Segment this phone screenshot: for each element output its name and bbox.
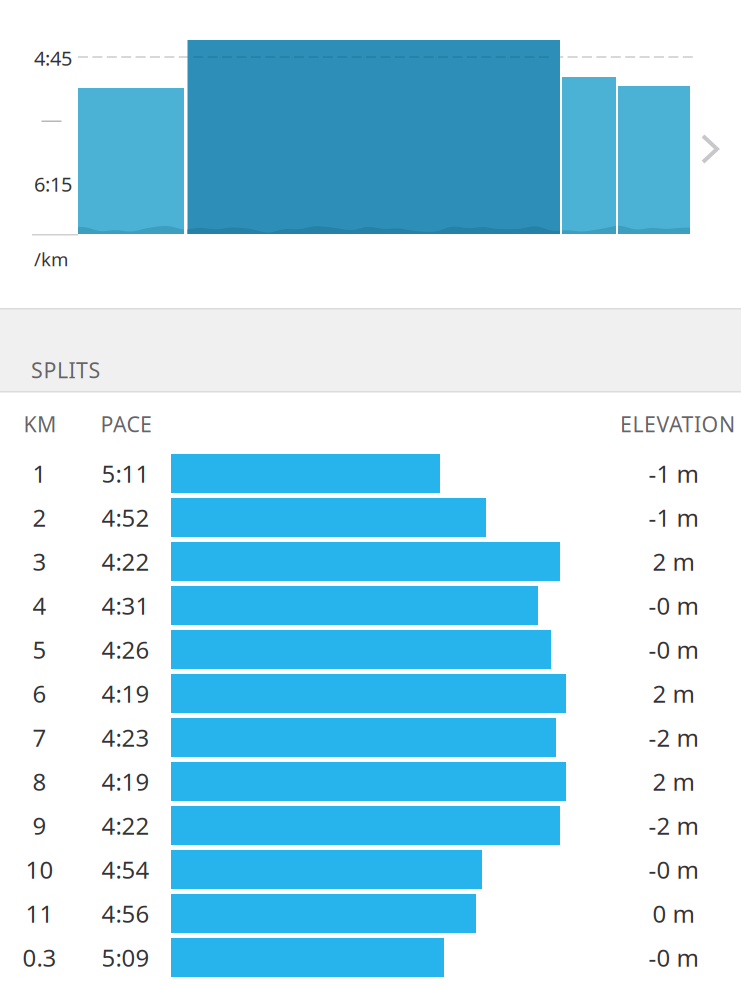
staticText: -0 m [648,634,698,665]
staticText: PACE [100,410,152,438]
staticText: KM [23,410,56,438]
staticText: 4:26 [101,634,149,665]
staticText: ELEVATION [620,410,735,438]
button[interactable]: 6 [0,671,741,715]
staticText: 5:09 [101,942,149,973]
staticText: -2 m [648,810,698,841]
staticText: /km [34,247,68,271]
staticText: 4:23 [101,722,149,753]
staticText: 4 [32,590,46,621]
staticText: 2 m [652,678,694,709]
staticText: 6:15 [34,171,72,197]
staticText: 7 [32,722,46,753]
staticText: 11 [25,898,53,929]
staticText: 4:22 [101,546,149,577]
staticText: -1 m [648,502,698,533]
staticText: 2 [32,502,46,533]
button[interactable]: 11 [0,891,741,935]
staticText: -0 m [648,942,698,973]
staticText: 8 [32,766,46,797]
staticText: 0 m [652,898,694,929]
staticText: 4:19 [101,766,149,797]
button[interactable]: Next split [692,125,740,173]
staticText: -0 m [648,854,698,885]
button[interactable]: 9 [0,803,741,847]
staticText: 4:56 [101,898,149,929]
staticText: 3 [32,546,46,577]
button[interactable]: 4 [0,583,741,627]
staticText: 10 [25,854,53,885]
staticText: 4:52 [101,502,149,533]
button[interactable]: 1 [0,451,741,495]
staticText: SPLITS [31,356,100,384]
button[interactable]: 5 [0,627,741,671]
button[interactable]: 3 [0,539,741,583]
staticText: 5 [32,634,46,665]
staticText: -0 m [648,590,698,621]
staticText: 2 m [652,546,694,577]
staticText: 0.3 [22,942,56,973]
button[interactable]: 10 [0,847,741,891]
button[interactable]: 7 [0,715,741,759]
staticText: 1 [32,458,46,489]
staticText: 5:11 [101,458,149,489]
staticText: 4:54 [101,854,149,885]
staticText: 4:45 [34,45,72,71]
button[interactable]: 0.3 [0,935,741,979]
staticText: 6 [32,678,46,709]
staticText: 4:22 [101,810,149,841]
button[interactable]: 2 [0,495,741,539]
staticText: 2 m [652,766,694,797]
staticText: 9 [32,810,46,841]
staticText: -2 m [648,722,698,753]
staticText: 4:19 [101,678,149,709]
staticText: 4:31 [101,590,149,621]
button[interactable]: 8 [0,759,741,803]
staticText: -1 m [648,458,698,489]
